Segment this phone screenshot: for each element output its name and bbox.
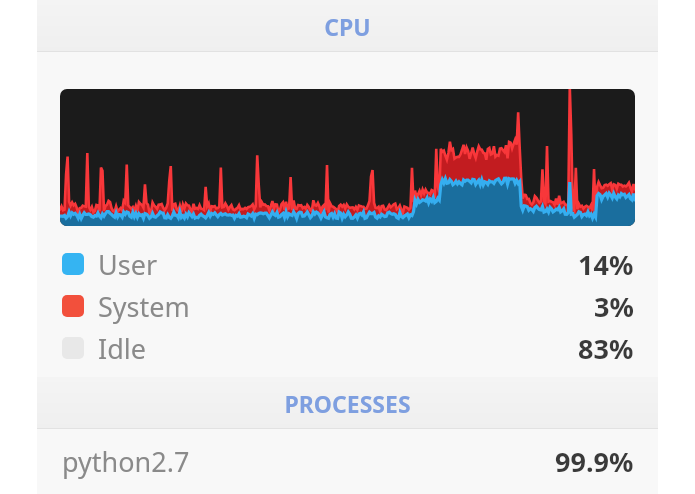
staticText: 99.9%	[555, 443, 634, 480]
staticText: PROCESSES	[284, 388, 411, 419]
button[interactable]: Idle	[37, 327, 658, 369]
staticText: User	[98, 246, 158, 283]
staticText: 14%	[578, 246, 634, 283]
staticText: Idle	[98, 330, 146, 367]
button[interactable]: CPU usage graph	[60, 89, 635, 226]
staticText: 3%	[594, 288, 634, 325]
staticText: CPU	[324, 11, 371, 42]
staticText: System	[98, 288, 190, 325]
staticText: 83%	[578, 330, 634, 367]
staticText: python2.7	[62, 443, 190, 480]
button[interactable]: System	[37, 285, 658, 327]
button[interactable]: User	[37, 243, 658, 285]
button[interactable]: python2.7	[37, 429, 658, 494]
